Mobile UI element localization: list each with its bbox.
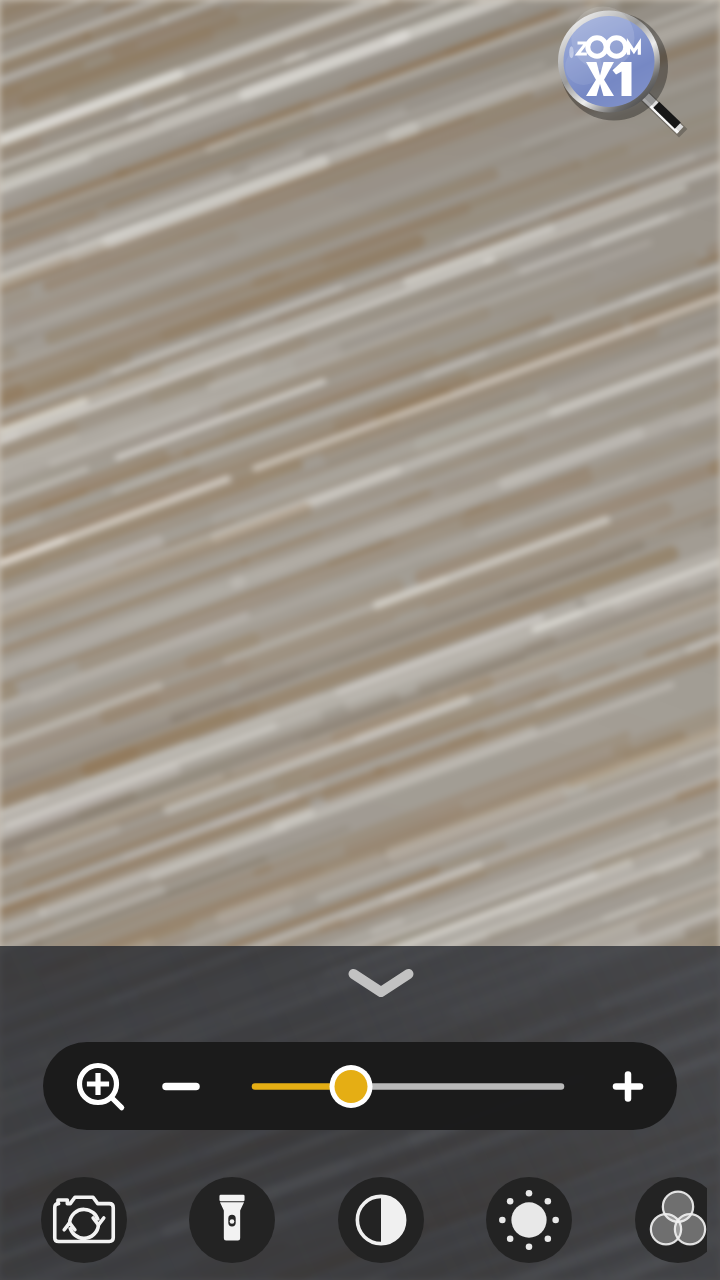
button[interactable]: Switch camera xyxy=(41,1177,127,1263)
button[interactable]: Contrast xyxy=(338,1177,424,1263)
button[interactable]: Zoom xyxy=(57,1042,141,1130)
button[interactable]: Colour filter xyxy=(635,1177,707,1263)
button[interactable]: Collapse controls xyxy=(321,950,441,1006)
button[interactable]: Zoom out xyxy=(139,1042,223,1130)
button[interactable]: Zoom in xyxy=(586,1042,670,1130)
button[interactable]: Brightness xyxy=(486,1177,572,1263)
button[interactable]: Flashlight xyxy=(189,1177,275,1263)
button[interactable]: Zoom level X1 xyxy=(555,0,705,165)
